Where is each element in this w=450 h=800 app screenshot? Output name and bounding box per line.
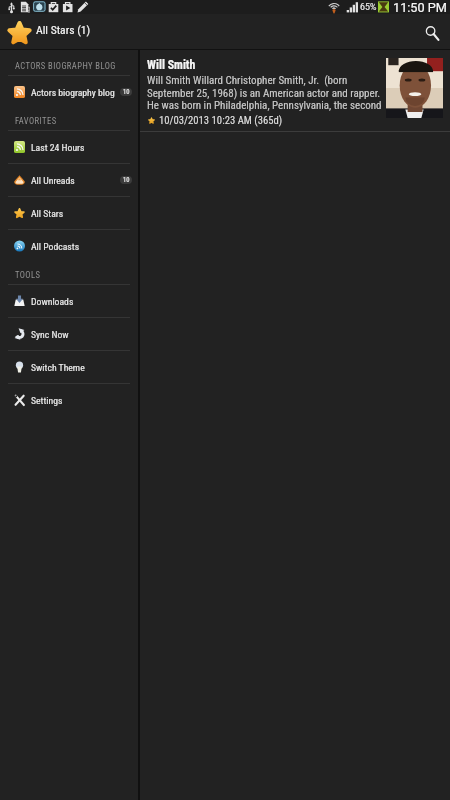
staticText: Switch Theme xyxy=(31,362,85,373)
button[interactable]: Last 24 Hours xyxy=(0,131,138,163)
staticText: All Unreads xyxy=(31,175,75,186)
staticText: Will Smith Willard Christopher Smith, Jr… xyxy=(147,74,382,111)
button[interactable]: Settings xyxy=(0,384,138,416)
button[interactable]: Actors biography blog xyxy=(0,76,138,108)
staticText: 10 xyxy=(123,88,130,96)
staticText: Last 24 Hours xyxy=(31,142,85,153)
staticText: 10 xyxy=(123,176,130,184)
button[interactable]: Switch Theme xyxy=(0,351,138,383)
button[interactable]: Downloads xyxy=(0,285,138,317)
staticText: Will Smith xyxy=(147,58,196,72)
staticText: Downloads xyxy=(31,296,74,307)
button[interactable]: Search xyxy=(408,14,450,50)
staticText: ACTORS BIOGRAPHY BLOG xyxy=(15,61,116,71)
button[interactable]: All Stars xyxy=(0,197,138,229)
staticText: 11:50 PM xyxy=(393,0,447,14)
staticText: All Stars (1) xyxy=(36,23,91,37)
staticText: FAVORITES xyxy=(15,116,57,126)
staticText: All Stars xyxy=(31,208,64,219)
staticText: All Podcasts xyxy=(31,241,80,252)
staticText: Actors biography blog xyxy=(31,87,115,98)
staticText: 10/03/2013 10:23 AM (365d) xyxy=(159,114,283,127)
button[interactable]: All Podcasts xyxy=(0,230,138,262)
button[interactable]: Sync Now xyxy=(0,318,138,350)
staticText: 65% xyxy=(360,2,377,12)
button[interactable]: Will Smith xyxy=(140,50,450,131)
button[interactable]: All Unreads xyxy=(0,164,138,196)
staticText: TOOLS xyxy=(15,270,41,280)
staticText: Settings xyxy=(31,395,63,406)
staticText: Sync Now xyxy=(31,329,69,340)
